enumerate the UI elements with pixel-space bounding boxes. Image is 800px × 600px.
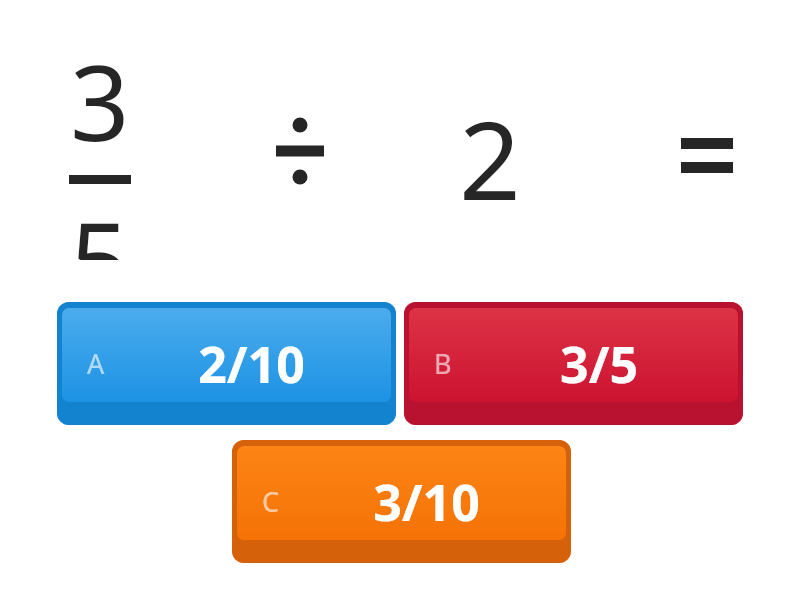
staticText: B [434, 345, 452, 382]
staticText: A [87, 345, 105, 382]
button[interactable]: B [404, 302, 743, 425]
staticText: 3/5 [560, 330, 638, 398]
staticText: 3/10 [373, 468, 480, 536]
staticText: 3 [70, 30, 130, 172]
button[interactable]: C [232, 440, 571, 563]
staticText: 5 [70, 187, 130, 260]
staticText: 2/10 [198, 330, 305, 398]
staticText: 2 [459, 85, 521, 232]
staticText: C [262, 483, 280, 520]
button[interactable]: A [57, 302, 396, 425]
